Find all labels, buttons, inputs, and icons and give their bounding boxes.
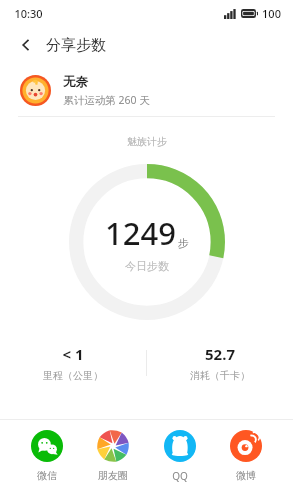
staticText: < 1 bbox=[62, 344, 84, 364]
staticText: 分享步数 bbox=[46, 36, 106, 55]
staticText: 微信 bbox=[37, 469, 57, 482]
button[interactable]: < 1 bbox=[0, 344, 146, 382]
staticText: 朋友圈 bbox=[98, 469, 128, 482]
button[interactable]: Back bbox=[10, 29, 42, 61]
staticText: 里程（公里） bbox=[43, 369, 103, 382]
staticText: 无奈 bbox=[63, 74, 88, 90]
staticText: 100 bbox=[262, 6, 281, 21]
staticText: 今日步数 bbox=[125, 259, 169, 273]
staticText: 10:30 bbox=[14, 6, 43, 21]
staticText: 微博 bbox=[236, 469, 256, 482]
staticText: 累计运动第 260 天 bbox=[63, 93, 150, 107]
button[interactable]: 微博 bbox=[220, 426, 272, 486]
button[interactable]: 无奈 bbox=[0, 64, 293, 116]
button[interactable]: 52.7 bbox=[147, 344, 293, 382]
staticText: 52.7 bbox=[205, 344, 235, 364]
button[interactable]: 微信 bbox=[21, 426, 73, 486]
staticText: 魅族计步 bbox=[127, 135, 167, 148]
staticText: QQ bbox=[172, 469, 188, 483]
staticText: 1249 bbox=[105, 212, 176, 254]
button[interactable]: QQ bbox=[154, 426, 206, 487]
staticText: 消耗（千卡） bbox=[190, 369, 250, 382]
button[interactable]: 朋友圈 bbox=[87, 426, 139, 486]
staticText: 步 bbox=[178, 236, 189, 250]
